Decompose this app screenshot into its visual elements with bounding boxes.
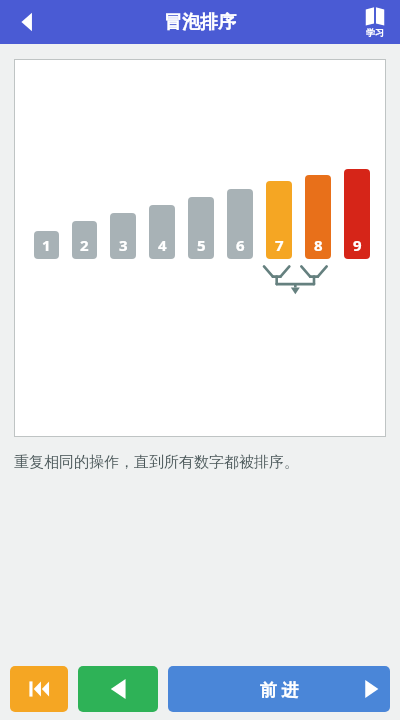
button[interactable]: Previous step <box>78 666 158 712</box>
staticText: 6 <box>236 235 245 255</box>
staticText: 冒泡排序 <box>164 11 236 34</box>
staticText: 8 <box>314 235 323 255</box>
button[interactable]: Back <box>0 0 56 44</box>
staticText: 4 <box>158 235 167 255</box>
staticText: 5 <box>197 235 206 255</box>
button[interactable]: 前 进 <box>168 666 390 712</box>
staticText: 重复相同的操作，直到所有数字都被排序。 <box>14 453 299 472</box>
button[interactable]: 学习 <box>350 0 400 44</box>
staticText: 前 进 <box>260 678 299 701</box>
staticText: 学习 <box>366 27 384 38</box>
button[interactable]: Restart <box>10 666 68 712</box>
staticText: 3 <box>119 235 128 255</box>
staticText: 1 <box>42 235 51 255</box>
staticText: 2 <box>80 235 89 255</box>
staticText: 7 <box>275 235 284 255</box>
staticText: 9 <box>353 235 362 255</box>
